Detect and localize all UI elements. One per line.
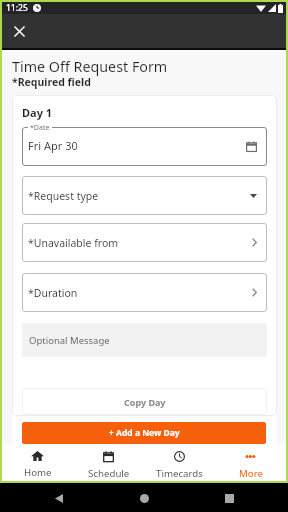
button[interactable]: Back	[46, 485, 72, 511]
staticText: *Required field	[12, 75, 91, 89]
staticText: Home	[24, 466, 52, 479]
button[interactable]: Timecards	[144, 444, 215, 481]
staticText: 11:25	[6, 2, 28, 14]
staticText: *Request type	[28, 189, 99, 203]
staticText: Fri Apr 30	[28, 138, 78, 153]
button[interactable]	[22, 127, 267, 166]
button[interactable]: Copy Day	[22, 388, 267, 415]
staticText: Copy Day	[124, 396, 166, 408]
staticText: More	[239, 467, 263, 480]
button[interactable]: Close	[7, 19, 31, 43]
button[interactable]: Home	[131, 485, 157, 511]
button[interactable]: *Unavailable from	[22, 223, 267, 262]
staticText: Day 1	[22, 105, 53, 120]
staticText: *Date	[30, 123, 50, 133]
button[interactable]: *Duration	[22, 273, 267, 312]
staticText: Schedule	[88, 467, 130, 480]
button[interactable]: Schedule	[73, 444, 144, 481]
staticText: Timecards	[156, 467, 203, 480]
button[interactable]: Optional Message	[22, 323, 267, 357]
staticText: *Duration	[28, 286, 78, 300]
button[interactable]: More	[215, 444, 286, 481]
button[interactable]: Home	[2, 444, 73, 481]
staticText: Optional Message	[29, 334, 110, 347]
staticText: *Unavailable from	[28, 236, 119, 250]
button[interactable]: *Request type	[22, 176, 267, 215]
staticText: Time Off Request Form	[12, 57, 168, 76]
button[interactable]: + Add a New Day	[22, 422, 266, 444]
button[interactable]: Recent apps	[216, 485, 242, 511]
staticText: + Add a New Day	[109, 427, 180, 439]
